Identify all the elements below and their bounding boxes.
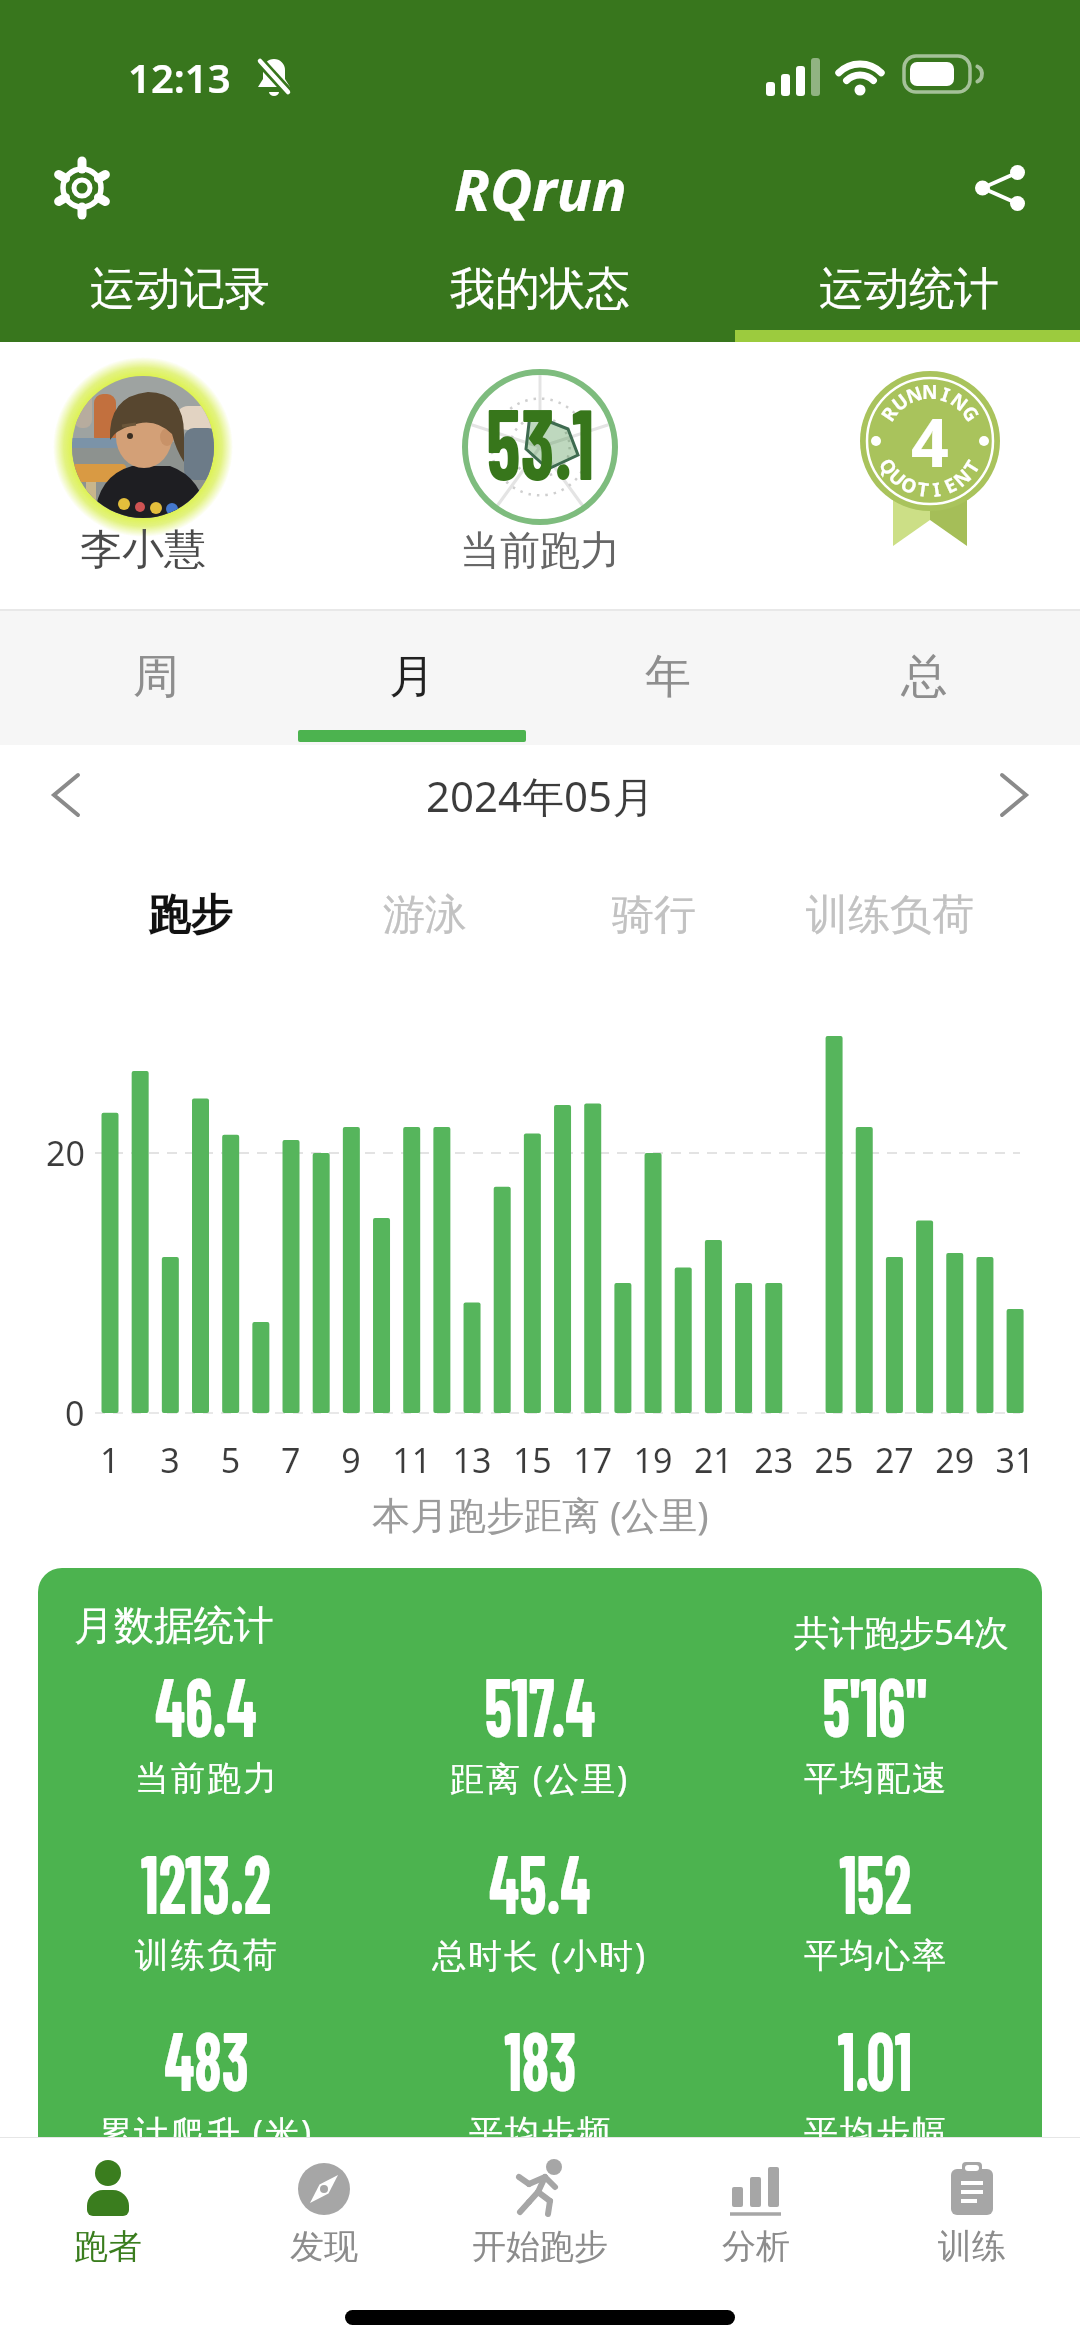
staticText: 距离 (公里) bbox=[450, 1755, 630, 1801]
staticText: 183 bbox=[504, 2008, 577, 2104]
staticText: 总 bbox=[901, 648, 947, 706]
staticText: 2024年05月 bbox=[426, 767, 655, 824]
staticText: 发现 bbox=[290, 2225, 358, 2268]
button[interactable]: 月 bbox=[284, 609, 540, 745]
staticText: 年 bbox=[645, 648, 691, 706]
staticText: 李小慧 bbox=[80, 524, 206, 577]
staticText: 开始跑步 bbox=[472, 2225, 608, 2268]
staticText: 本月跑步距离 (公里) bbox=[372, 1488, 709, 1538]
staticText: 骑行 bbox=[612, 889, 696, 942]
staticText: RQrun bbox=[454, 149, 627, 228]
button[interactable]: 运动记录 bbox=[0, 248, 360, 342]
staticText: 累计爬升 (米) bbox=[98, 2109, 314, 2155]
staticText: 平均步幅 bbox=[803, 2111, 947, 2154]
button[interactable]: 我的状态 bbox=[360, 248, 720, 342]
button[interactable]: 发现 bbox=[229, 2145, 419, 2270]
staticText: 45.4 bbox=[489, 1831, 591, 1927]
staticText: 周 bbox=[133, 648, 179, 706]
button[interactable] bbox=[958, 146, 1042, 230]
button[interactable]: 训练 bbox=[877, 2145, 1067, 2270]
staticText: 1213.2 bbox=[141, 1831, 271, 1927]
staticText: 1.01 bbox=[837, 2008, 912, 2104]
staticText: 总时长 (小时) bbox=[432, 1932, 648, 1978]
staticText: 我的状态 bbox=[450, 261, 630, 318]
staticText: 平均心率 bbox=[803, 1934, 947, 1977]
button[interactable] bbox=[980, 760, 1050, 830]
staticText: 53.1 bbox=[486, 380, 595, 500]
staticText: 训练 bbox=[938, 2225, 1006, 2268]
staticText: 12:13 bbox=[128, 50, 231, 104]
button[interactable]: 游泳 bbox=[345, 870, 505, 960]
staticText: 月 bbox=[389, 648, 435, 706]
staticText: 训练负荷 bbox=[806, 889, 974, 942]
staticText: 训练负荷 bbox=[134, 1934, 278, 1977]
button[interactable] bbox=[30, 760, 100, 830]
button[interactable]: 周 bbox=[28, 609, 284, 745]
button[interactable]: 分析 bbox=[661, 2145, 851, 2270]
staticText: 跑者 bbox=[74, 2225, 142, 2268]
staticText: 152 bbox=[839, 1831, 912, 1927]
staticText: 月数据统计 bbox=[74, 1600, 274, 1650]
staticText: 运动记录 bbox=[90, 261, 270, 318]
staticText: 当前跑力 bbox=[460, 525, 620, 575]
staticText: 跑步 bbox=[148, 889, 232, 942]
staticText: 分析 bbox=[722, 2225, 790, 2268]
staticText: 平均步频 bbox=[468, 2111, 612, 2154]
staticText: 共计跑步54次 bbox=[794, 1608, 1010, 1656]
button[interactable]: 训练负荷 bbox=[790, 870, 990, 960]
button[interactable]: 运动统计 bbox=[720, 248, 1080, 342]
staticText: 5'16" bbox=[822, 1654, 927, 1750]
staticText: 483 bbox=[164, 2008, 249, 2104]
staticText: 当前跑力 bbox=[134, 1757, 278, 1800]
staticText: 平均配速 bbox=[803, 1757, 947, 1800]
button[interactable]: 年 bbox=[540, 609, 796, 745]
staticText: 游泳 bbox=[383, 889, 467, 942]
button[interactable]: 跑步 bbox=[110, 870, 270, 960]
button[interactable]: 总 bbox=[796, 609, 1052, 745]
button[interactable]: 开始跑步 bbox=[445, 2145, 635, 2270]
staticText: 运动统计 bbox=[819, 261, 999, 318]
staticText: 517.4 bbox=[484, 1654, 595, 1750]
button[interactable]: 跑者 bbox=[13, 2145, 203, 2270]
button[interactable] bbox=[53, 357, 233, 537]
staticText: 46.4 bbox=[155, 1654, 257, 1750]
button[interactable]: 骑行 bbox=[574, 870, 734, 960]
button[interactable] bbox=[40, 146, 124, 230]
